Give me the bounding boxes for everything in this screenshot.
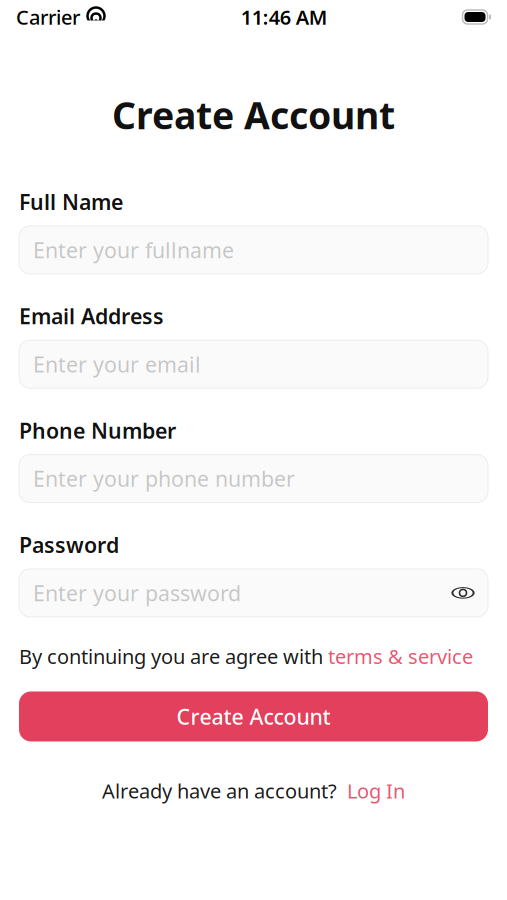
staticText: Create Account bbox=[112, 90, 395, 140]
button[interactable]: Enter your password bbox=[19, 569, 488, 617]
staticText: Password bbox=[19, 531, 119, 559]
button[interactable]: Enter your phone number bbox=[19, 455, 488, 503]
staticText: Enter your email bbox=[33, 350, 201, 378]
staticText: Full Name bbox=[19, 188, 123, 216]
staticText: terms & service bbox=[328, 643, 473, 669]
staticText: Create Account bbox=[176, 702, 330, 731]
staticText: By continuing you are agree with bbox=[19, 643, 328, 669]
staticText: Enter your fullname bbox=[33, 236, 234, 264]
button[interactable]: Enter your email bbox=[19, 340, 488, 388]
staticText: Enter your phone number bbox=[33, 464, 295, 493]
button[interactable]: Log In bbox=[347, 777, 405, 804]
staticText: 11:46 AM bbox=[241, 4, 328, 30]
staticText: Log In bbox=[347, 777, 405, 804]
button[interactable]: Create Account bbox=[19, 691, 488, 741]
staticText: Email Address bbox=[19, 302, 164, 330]
staticText: Enter your password bbox=[33, 579, 241, 607]
button[interactable]: Enter your fullname bbox=[19, 226, 488, 274]
button[interactable]: terms & service bbox=[328, 643, 473, 669]
staticText: Already have an account? bbox=[102, 777, 337, 804]
staticText: Phone Number bbox=[19, 416, 176, 444]
staticText: Carrier bbox=[16, 4, 80, 30]
